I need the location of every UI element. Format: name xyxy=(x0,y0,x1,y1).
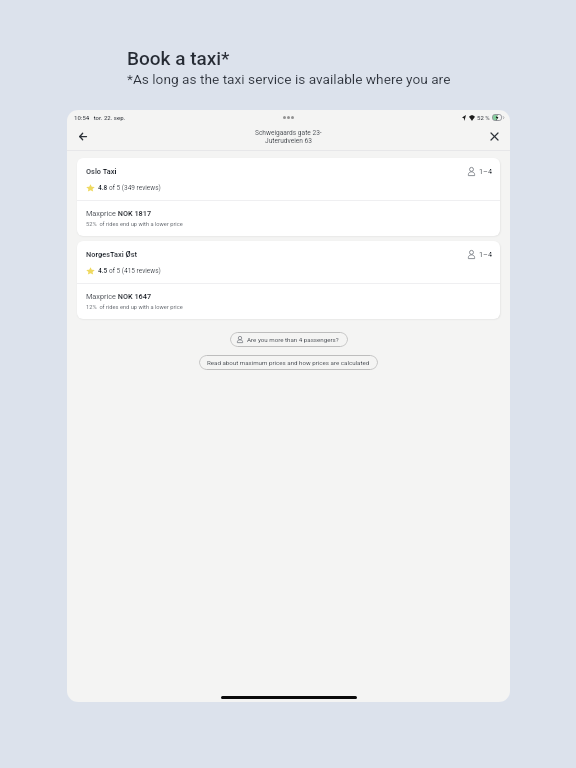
staticText: Read about maximum prices and how prices… xyxy=(207,359,370,366)
button[interactable]: Close xyxy=(484,126,504,146)
staticText: 4.8 of 5 (349 reviews) xyxy=(98,184,161,192)
staticText: 12% of rides end up with a lower price xyxy=(86,304,183,311)
staticText: 52% of rides end up with a lower price xyxy=(86,221,183,228)
staticText: 1–4 xyxy=(479,167,492,176)
staticText: 10:54 tor. 22. sep. xyxy=(74,114,126,121)
button[interactable]: Oslo Taxi xyxy=(77,158,500,236)
button[interactable]: Are you more than 4 passengers? xyxy=(230,332,348,347)
staticText: Book a taxi* xyxy=(127,47,230,69)
staticText: Maxprice NOK 1647 xyxy=(86,292,152,301)
staticText: Maxprice NOK 1817 xyxy=(86,209,152,218)
staticText: Oslo Taxi xyxy=(86,167,117,176)
staticText: Schweigaards gate 23- xyxy=(255,129,322,137)
button[interactable]: NorgesTaxi Øst xyxy=(77,241,500,319)
staticText: 4.5 of 5 (415 reviews) xyxy=(98,267,161,275)
staticText: Juterudveien 63 xyxy=(265,137,312,145)
button[interactable]: Back xyxy=(73,126,93,146)
button[interactable]: Read about maximum prices and how prices… xyxy=(199,355,378,370)
staticText: 1–4 xyxy=(479,250,492,259)
staticText: NorgesTaxi Øst xyxy=(86,250,137,259)
staticText: *As long as the taxi service is availabl… xyxy=(127,71,451,87)
staticText: 52 % xyxy=(477,114,490,121)
staticText: Are you more than 4 passengers? xyxy=(247,336,339,343)
